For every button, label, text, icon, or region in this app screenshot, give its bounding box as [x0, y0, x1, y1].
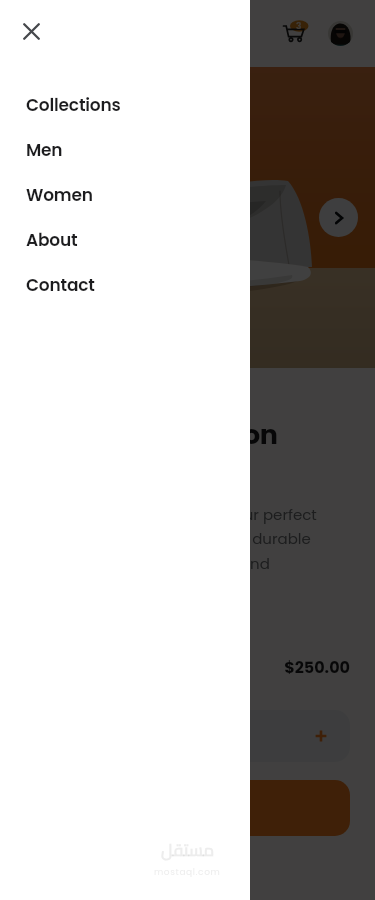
- button[interactable]: Profile: [328, 21, 353, 46]
- button[interactable]: About: [0, 217, 250, 262]
- button[interactable]: Add to Cart: [25, 780, 350, 836]
- staticText: Collections: [26, 93, 121, 117]
- button[interactable]: Contact: [0, 262, 250, 307]
- staticText: About: [26, 228, 78, 252]
- staticText: Premium Sneaker Collection: [25, 380, 278, 454]
- staticText: $250.00: [25, 656, 350, 678]
- button[interactable]: Open menu: [22, 22, 46, 46]
- button[interactable]: Close menu: [22, 22, 41, 41]
- staticText: Contact: [26, 273, 95, 297]
- staticText: mostaql.com: [154, 866, 221, 879]
- staticText: مستقل: [161, 834, 215, 866]
- button[interactable]: Men: [0, 127, 250, 172]
- staticText: Women: [26, 183, 93, 207]
- staticText: Elevate your daily style with our perfec…: [25, 504, 350, 600]
- staticText: Men: [26, 138, 63, 162]
- button[interactable]: Increase quantity: [311, 726, 331, 746]
- staticText: 3: [296, 20, 302, 33]
- button[interactable]: Next image: [319, 198, 358, 237]
- button[interactable]: Shopping cart: [283, 19, 313, 49]
- button[interactable]: Collections: [0, 82, 250, 127]
- button[interactable]: Women: [0, 172, 250, 217]
- button[interactable]: [0, 0, 375, 900]
